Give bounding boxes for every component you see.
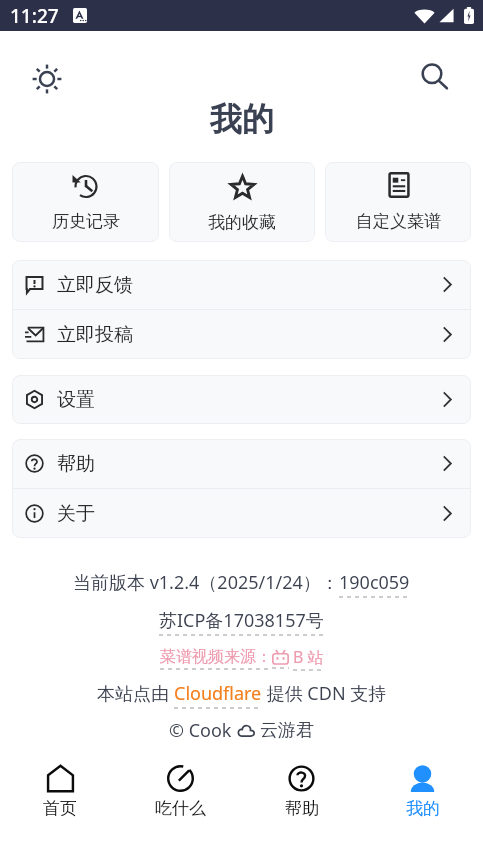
staticText: 帮助 (285, 798, 319, 819)
staticText: 本站点由 (97, 681, 174, 706)
button[interactable]: Toggle theme (28, 60, 66, 98)
button[interactable]: 吃什么 (120, 744, 241, 819)
staticText: 11:27 (10, 3, 59, 29)
staticText: 帮助 (57, 452, 95, 476)
button[interactable]: 关于 (12, 489, 471, 538)
staticText: 云游君 (260, 719, 314, 742)
staticText: 提供 CDN 支持 (262, 681, 387, 706)
staticText: Cloudflare (174, 681, 262, 706)
staticText: 吃什么 (155, 798, 206, 819)
staticText: 立即反馈 (57, 273, 133, 297)
staticText: 首页 (43, 798, 77, 819)
staticText: B 站 (293, 646, 324, 668)
button[interactable]: 首页 (0, 744, 120, 819)
button[interactable]: 帮助 (241, 744, 362, 819)
staticText: 190c059 (339, 570, 410, 595)
staticText: 历史记录 (52, 211, 120, 232)
button[interactable]: 我的收藏 (169, 162, 315, 242)
button[interactable]: 历史记录 (12, 162, 159, 242)
staticText: 当前版本 v1.2.4（2025/1/24）： (73, 570, 339, 595)
button[interactable]: 我的 (362, 744, 483, 819)
staticText: 立即投稿 (57, 323, 133, 347)
staticText: 关于 (57, 502, 95, 526)
staticText: 我的 (406, 798, 440, 819)
button[interactable]: Search (417, 59, 451, 93)
staticText: © Cook (169, 718, 237, 743)
button[interactable]: 自定义菜谱 (325, 162, 471, 242)
staticText: 自定义菜谱 (356, 211, 441, 232)
button[interactable]: 设置 (12, 375, 471, 424)
staticText: 菜谱视频来源： (160, 647, 272, 667)
staticText: 苏ICP备17038157号 (159, 608, 324, 633)
staticText: 设置 (57, 388, 95, 412)
button[interactable]: 帮助 (12, 439, 471, 488)
button[interactable]: 立即投稿 (12, 310, 471, 359)
staticText: 我的 (210, 99, 274, 139)
button[interactable]: 立即反馈 (12, 260, 471, 309)
staticText: 我的收藏 (208, 212, 276, 233)
